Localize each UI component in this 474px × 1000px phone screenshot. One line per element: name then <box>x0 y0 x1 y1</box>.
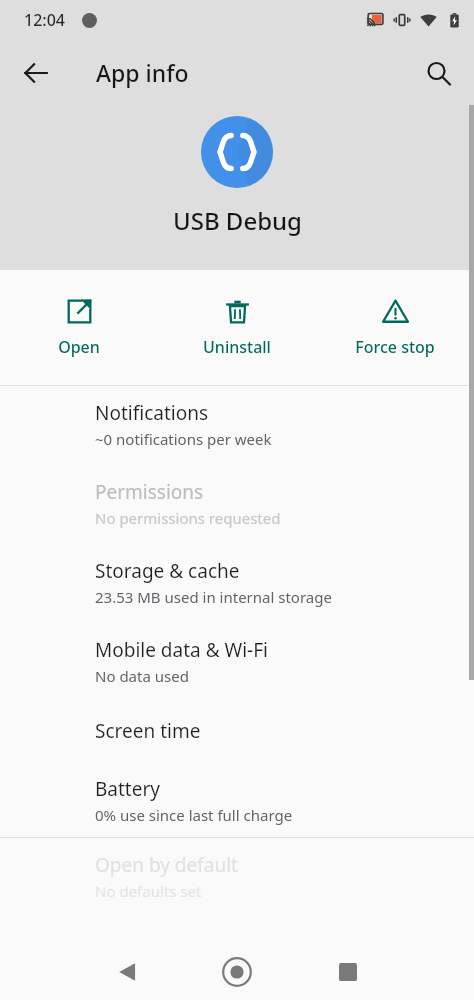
button[interactable]: Permissions <box>0 461 474 540</box>
staticText: No permissions requested <box>95 508 281 528</box>
staticText: Mobile data & Wi-Fi <box>95 637 268 663</box>
button[interactable]: Recent apps <box>320 944 376 1000</box>
staticText: Force stop <box>355 336 435 358</box>
button[interactable]: Force stop <box>316 288 474 368</box>
button[interactable]: Uninstall <box>158 288 316 368</box>
staticText: 0% use since last full charge <box>95 805 293 825</box>
staticText: Permissions <box>95 479 204 505</box>
button[interactable]: Home <box>209 944 265 1000</box>
staticText: 23.53 MB used in internal storage <box>95 587 332 607</box>
staticText: Storage & cache <box>95 558 240 584</box>
button[interactable]: Battery <box>0 756 474 837</box>
staticText: Uninstall <box>203 336 271 358</box>
button[interactable]: Mobile data & Wi-Fi <box>0 619 474 698</box>
staticText: ~0 notifications per week <box>95 429 272 449</box>
staticText: Open <box>58 336 100 358</box>
button[interactable]: Search <box>412 47 464 99</box>
staticText: Screen time <box>95 718 201 744</box>
staticText: No defaults set <box>95 881 202 901</box>
staticText: App info <box>96 57 189 88</box>
staticText: Battery <box>95 776 160 802</box>
staticText: No data used <box>95 666 189 686</box>
button[interactable]: Open by default <box>0 838 474 913</box>
staticText: Notifications <box>95 400 209 426</box>
button[interactable]: Open <box>0 288 158 368</box>
button[interactable]: Notifications <box>0 386 474 461</box>
staticText: 12:04 <box>24 9 65 31</box>
button[interactable]: Storage & cache <box>0 540 474 619</box>
button[interactable]: Back <box>100 944 156 1000</box>
button[interactable]: Back <box>10 47 62 99</box>
staticText: Open by default <box>95 852 238 878</box>
staticText: USB Debug <box>173 204 302 237</box>
button[interactable]: Screen time <box>0 698 474 756</box>
